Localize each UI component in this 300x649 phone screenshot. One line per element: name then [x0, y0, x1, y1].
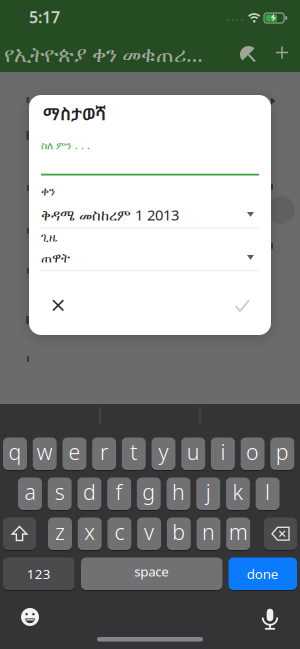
button[interactable]: w	[33, 437, 57, 470]
staticText: u	[187, 438, 200, 466]
button[interactable]: h	[166, 477, 190, 510]
staticText: ስለ ምን . . .	[41, 138, 90, 152]
staticText: l	[265, 478, 270, 506]
button[interactable]: done	[228, 557, 297, 590]
button[interactable]: x	[78, 517, 102, 550]
button[interactable]: m	[226, 517, 250, 550]
staticText: g	[142, 478, 155, 506]
staticText: ጊዜ	[41, 232, 57, 244]
staticText: r	[100, 438, 108, 466]
staticText: n	[202, 518, 215, 546]
button[interactable]: n	[196, 517, 220, 550]
staticText: d	[83, 478, 96, 506]
staticText: s	[55, 478, 65, 506]
staticText: z	[55, 518, 65, 546]
button[interactable]: u	[181, 437, 205, 470]
button[interactable]: f	[107, 477, 131, 510]
button[interactable]: space	[81, 557, 222, 590]
button[interactable]: k	[226, 477, 250, 510]
button[interactable]: a	[18, 477, 42, 510]
button[interactable]: 123	[3, 557, 74, 590]
staticText: a	[24, 478, 35, 506]
staticText: w	[37, 438, 53, 466]
staticText: ጠዋት	[41, 252, 70, 265]
staticText: ማስታወሻ	[43, 102, 106, 125]
staticText: c	[114, 518, 124, 546]
button[interactable]: r	[92, 437, 116, 470]
staticText: የኢትዮጵያ ቀን መቁጠሪያ እና ...	[4, 39, 204, 68]
button[interactable]: g	[137, 477, 161, 510]
button[interactable]: j	[196, 477, 220, 510]
button[interactable]: l	[256, 477, 280, 510]
staticText: t	[130, 438, 137, 466]
button[interactable]	[231, 295, 253, 317]
button[interactable]	[238, 41, 264, 67]
staticText: v	[144, 518, 154, 546]
button[interactable]: p	[270, 437, 294, 470]
staticText: j	[206, 478, 211, 506]
button[interactable]: y	[151, 437, 175, 470]
staticText: h	[172, 478, 185, 506]
button[interactable]	[264, 517, 297, 550]
button[interactable]: c	[107, 517, 131, 550]
button[interactable]: i	[211, 437, 235, 470]
staticText: x	[84, 518, 95, 546]
button[interactable]: q	[3, 437, 27, 470]
staticText: m	[229, 518, 248, 546]
button[interactable]: d	[77, 477, 101, 510]
button[interactable]	[48, 295, 68, 315]
button[interactable]	[269, 39, 295, 65]
staticText: f	[116, 478, 123, 506]
staticText: b	[172, 518, 185, 546]
button[interactable]	[3, 517, 36, 550]
staticText: space	[134, 562, 169, 580]
staticText: q	[8, 438, 21, 466]
button[interactable]: ጠዋት	[41, 248, 259, 271]
staticText: done	[247, 565, 279, 583]
staticText: k	[232, 478, 243, 506]
staticText: y	[158, 438, 168, 466]
staticText: ቅዳሜ መስከረም 1 2013	[41, 205, 179, 224]
button[interactable]: z	[48, 517, 72, 550]
button[interactable]: ስለ ምን . . .	[41, 138, 259, 175]
staticText: p	[276, 438, 289, 466]
button[interactable]: s	[48, 477, 72, 510]
staticText: o	[246, 438, 259, 466]
button[interactable]: v	[137, 517, 161, 550]
staticText: ቀን	[41, 186, 55, 198]
staticText: 5:17	[29, 6, 60, 28]
button[interactable]	[256, 602, 284, 632]
button[interactable]	[18, 605, 42, 629]
button[interactable]: e	[62, 437, 86, 470]
button[interactable]: ቅዳሜ መስከረም 1 2013	[41, 205, 259, 228]
staticText: e	[68, 438, 80, 466]
button[interactable]: b	[167, 517, 191, 550]
staticText: i	[220, 438, 225, 466]
staticText: 123	[27, 565, 51, 583]
button[interactable]: t	[122, 437, 146, 470]
button[interactable]: o	[241, 437, 265, 470]
